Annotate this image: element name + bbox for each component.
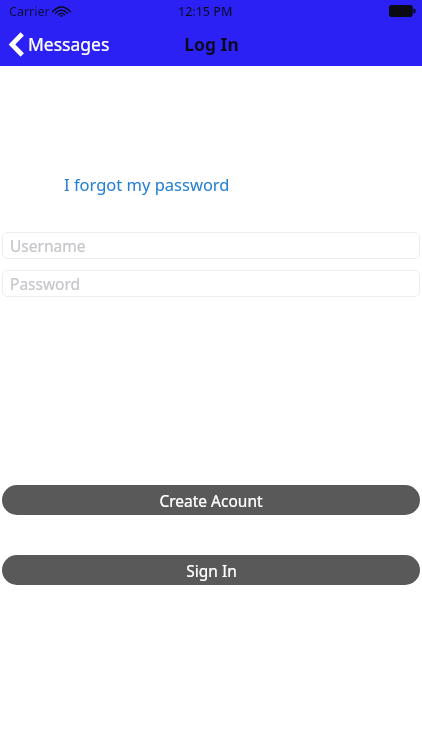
button[interactable]: Password — [2, 270, 420, 297]
other: Back — [10, 34, 22, 55]
button[interactable]: I forgot my password — [62, 171, 232, 197]
staticText: Username — [10, 235, 86, 256]
staticText: Password — [10, 273, 81, 294]
staticText: Sign In — [186, 560, 237, 581]
staticText: 12:15 PM — [178, 3, 233, 20]
button[interactable]: Back — [0, 26, 120, 62]
staticText: Messages — [28, 32, 110, 56]
staticText: Create Acount — [159, 490, 263, 511]
staticText: I forgot my password — [64, 173, 230, 195]
staticText: Log In — [184, 32, 239, 56]
button[interactable]: Create Acount — [2, 485, 420, 515]
button[interactable]: Username — [2, 232, 420, 259]
button[interactable]: Sign In — [2, 555, 420, 585]
staticText: Carrier — [9, 3, 50, 20]
